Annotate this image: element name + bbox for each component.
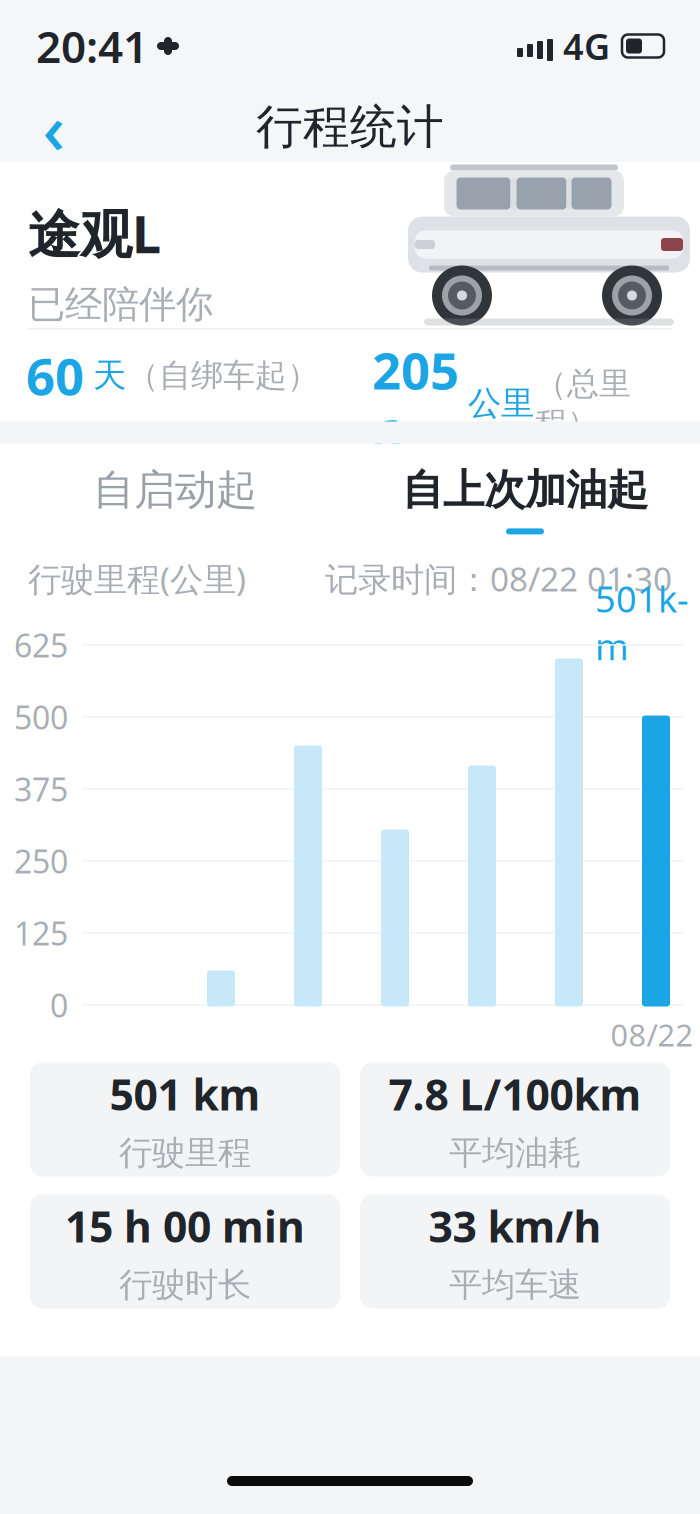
- staticText: 途观L: [28, 198, 161, 268]
- button[interactable]: 自启动起: [0, 445, 350, 554]
- button[interactable]: 返回: [22, 95, 86, 159]
- staticText: 7.8 L/100km: [388, 1066, 641, 1122]
- staticText: 20:41: [36, 17, 148, 75]
- staticText: 4G: [563, 22, 610, 70]
- staticText: 记录时间：08/22 01:30: [325, 556, 672, 601]
- staticText: 自上次加油起: [402, 465, 648, 515]
- staticText: 公里: [468, 383, 534, 424]
- staticText: 2056: [372, 336, 459, 471]
- staticText: 501 km: [109, 1066, 260, 1122]
- staticText: 501km: [595, 575, 689, 670]
- staticText: 行驶里程(公里): [28, 556, 246, 601]
- staticText: 500: [14, 696, 68, 738]
- staticText: 625: [14, 624, 68, 666]
- staticText: 60: [26, 342, 84, 409]
- staticText: 125: [14, 912, 68, 954]
- staticText: 自启动起: [93, 465, 257, 515]
- staticText: 平均油耗: [449, 1132, 581, 1173]
- staticText: 天: [93, 355, 126, 396]
- staticText: 08/22: [610, 1014, 693, 1055]
- staticText: 行程统计: [256, 98, 444, 156]
- staticText: 15 h 00 min: [65, 1198, 305, 1254]
- staticText: 33 km/h: [428, 1198, 601, 1254]
- staticText: 375: [14, 768, 68, 810]
- staticText: 行驶时长: [119, 1264, 251, 1305]
- staticText: 250: [14, 840, 68, 882]
- staticText: ‹: [42, 81, 65, 173]
- button[interactable]: 自上次加油起: [350, 445, 700, 554]
- staticText: 行驶里程: [119, 1132, 251, 1173]
- staticText: （自绑车起）: [127, 356, 319, 395]
- staticText: 平均车速: [449, 1264, 581, 1305]
- staticText: （总里程）: [535, 364, 631, 443]
- staticText: 0: [50, 984, 68, 1026]
- staticText: 已经陪伴你: [28, 282, 213, 327]
